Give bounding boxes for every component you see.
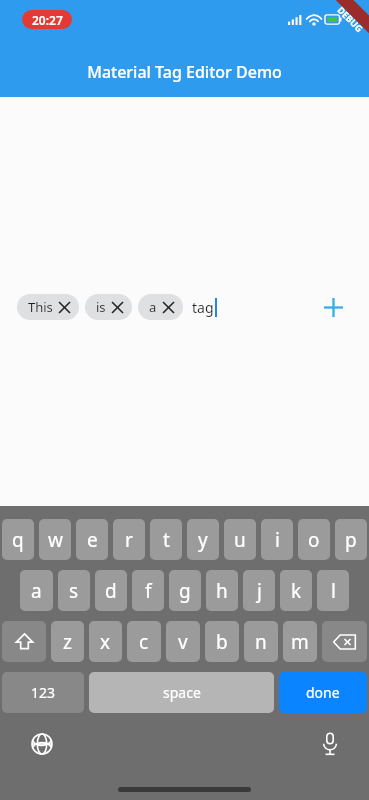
- staticText: is: [96, 298, 106, 316]
- button[interactable]: Backspace: [322, 621, 367, 662]
- button[interactable]: w: [39, 519, 71, 560]
- button[interactable]: i: [261, 519, 293, 560]
- button[interactable]: u: [224, 519, 256, 560]
- staticText: a: [31, 578, 42, 604]
- button[interactable]: z: [51, 621, 84, 662]
- staticText: tag: [192, 298, 214, 317]
- button[interactable]: Change keyboard language: [25, 727, 59, 761]
- button[interactable]: j: [243, 570, 275, 611]
- staticText: z: [63, 629, 72, 655]
- button[interactable]: v: [166, 621, 200, 662]
- staticText: This: [28, 298, 53, 316]
- button[interactable]: k: [280, 570, 312, 611]
- staticText: q: [12, 527, 24, 553]
- button[interactable]: a: [138, 294, 183, 320]
- button[interactable]: is: [85, 294, 132, 320]
- button[interactable]: Add tag: [317, 291, 349, 323]
- button[interactable]: b: [205, 621, 239, 662]
- staticText: h: [216, 578, 228, 604]
- button[interactable]: c: [127, 621, 161, 662]
- staticText: d: [105, 578, 117, 604]
- button[interactable]: h: [206, 570, 238, 611]
- button[interactable]: x: [89, 621, 122, 662]
- staticText: l: [331, 578, 336, 604]
- staticText: g: [179, 578, 191, 604]
- staticText: done: [306, 683, 340, 702]
- button[interactable]: m: [283, 621, 317, 662]
- staticText: 123: [31, 683, 56, 702]
- button[interactable]: l: [317, 570, 349, 611]
- button[interactable]: f: [132, 570, 164, 611]
- staticText: a: [149, 298, 157, 316]
- staticText: j: [257, 578, 262, 604]
- staticText: x: [100, 629, 111, 655]
- staticText: DEBUG: [335, 4, 366, 34]
- staticText: r: [125, 527, 133, 553]
- button[interactable]: o: [298, 519, 330, 560]
- staticText: m: [291, 629, 309, 655]
- staticText: i: [275, 527, 280, 553]
- button[interactable]: s: [58, 570, 90, 611]
- staticText: n: [255, 629, 267, 655]
- button[interactable]: e: [76, 519, 108, 560]
- staticText: b: [216, 629, 228, 655]
- button[interactable]: a: [20, 570, 53, 611]
- button[interactable]: r: [113, 519, 145, 560]
- staticText: u: [234, 527, 246, 553]
- button[interactable]: p: [335, 519, 367, 560]
- staticText: f: [145, 578, 152, 604]
- button[interactable]: y: [187, 519, 219, 560]
- staticText: k: [291, 578, 302, 604]
- staticText: t: [163, 527, 170, 553]
- staticText: w: [48, 527, 63, 553]
- staticText: e: [87, 527, 98, 553]
- button[interactable]: Shift: [2, 621, 46, 662]
- staticText: Material Tag Editor Demo: [87, 61, 282, 83]
- staticText: s: [69, 578, 79, 604]
- button[interactable]: 123: [2, 672, 84, 713]
- button[interactable]: d: [95, 570, 127, 611]
- button[interactable]: done: [279, 672, 367, 713]
- staticText: 20:27: [32, 12, 63, 28]
- button[interactable]: q: [2, 519, 34, 560]
- staticText: space: [163, 683, 201, 702]
- staticText: o: [308, 527, 320, 553]
- staticText: p: [345, 527, 357, 553]
- button[interactable]: n: [244, 621, 278, 662]
- button[interactable]: Voice input: [313, 727, 347, 761]
- button[interactable]: This: [17, 294, 79, 320]
- button[interactable]: space: [89, 672, 274, 713]
- button[interactable]: t: [150, 519, 182, 560]
- button[interactable]: g: [169, 570, 201, 611]
- staticText: c: [139, 629, 149, 655]
- staticText: y: [198, 527, 208, 553]
- staticText: v: [178, 629, 188, 655]
